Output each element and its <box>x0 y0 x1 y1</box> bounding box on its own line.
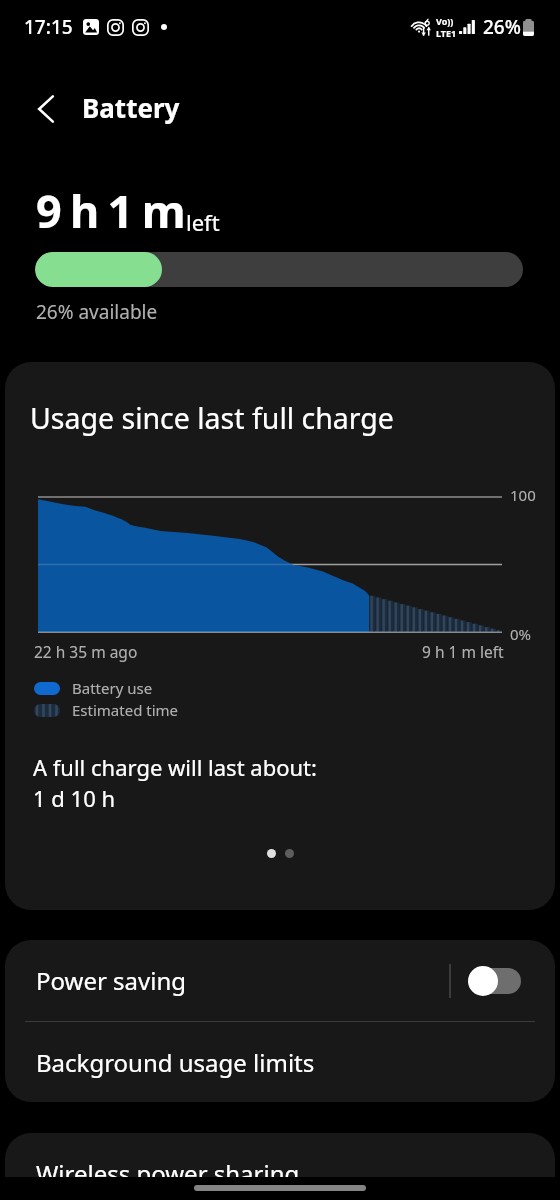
staticText: Battery <box>82 90 180 125</box>
staticText: Power saving <box>36 964 187 997</box>
staticText: Wireless power sharing <box>36 1157 300 1190</box>
staticText: Background usage limits <box>36 1046 315 1079</box>
button[interactable]: Page 1 <box>267 849 276 858</box>
staticText: Vo)) <box>436 15 454 27</box>
staticText: LTE1 <box>436 27 457 39</box>
staticText: 9 h 1 m left <box>422 641 504 662</box>
staticText: Usage since last full charge <box>30 399 394 438</box>
staticText: 17:15 <box>24 14 73 40</box>
staticText: 26% <box>483 14 521 40</box>
staticText: 1 d 10 h <box>33 783 116 813</box>
button[interactable]: Power saving <box>5 940 555 1021</box>
button[interactable]: Power saving toggle <box>469 966 521 996</box>
staticText: 9 h 1 m <box>36 180 184 241</box>
button[interactable]: Back <box>24 87 68 131</box>
staticText: Battery use <box>72 678 153 698</box>
button[interactable]: Page 2 <box>285 849 294 858</box>
staticText: left <box>186 207 220 237</box>
button[interactable]: Usage since last full charge <box>5 362 555 910</box>
staticText: 22 h 35 m ago <box>34 641 138 662</box>
staticText: 26% available <box>36 299 158 325</box>
staticText: 0% <box>510 624 532 644</box>
staticText: Estimated time <box>72 700 179 720</box>
button[interactable]: Wireless power sharing <box>5 1133 555 1200</box>
button[interactable]: Background usage limits <box>5 1022 555 1102</box>
staticText: A full charge will last about: <box>33 752 317 782</box>
staticText: 100 <box>510 485 536 505</box>
